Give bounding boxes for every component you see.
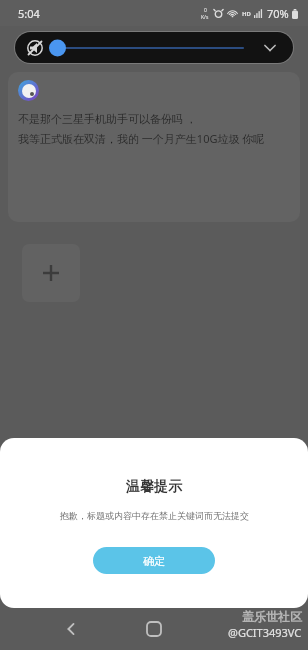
staticText: @GCIT3493VC <box>228 625 302 640</box>
button[interactable]: 确定 <box>93 547 215 574</box>
staticText: 盖乐世社区 <box>242 609 302 624</box>
staticText: 不是那个三星手机助手可以备份吗 ， 我等正式版在双清，我的 一个月产生10G垃圾… <box>18 111 265 146</box>
button[interactable]: Home <box>139 614 169 644</box>
staticText: K/s <box>201 14 209 21</box>
staticText: HD <box>242 10 251 18</box>
button[interactable]: Back <box>56 614 86 644</box>
button[interactable] <box>49 37 243 59</box>
staticText: 70% <box>267 6 289 21</box>
button[interactable]: 不是那个三星手机助手可以备份吗 ， 我等正式版在双清，我的 一个月产生10G垃圾… <box>8 72 300 222</box>
button[interactable]: Mute <box>24 37 46 59</box>
button[interactable]: Recents <box>230 614 260 644</box>
staticText: 抱歉，标题或内容中存在禁止关键词而无法提交 <box>60 510 249 521</box>
staticText: 0 <box>204 7 207 14</box>
staticText: 确定 <box>143 554 165 568</box>
staticText: 温馨提示 <box>126 478 182 496</box>
button[interactable]: Add photo <box>22 244 80 302</box>
button[interactable]: Expand <box>259 37 281 59</box>
staticText: 5:04 <box>18 6 40 21</box>
